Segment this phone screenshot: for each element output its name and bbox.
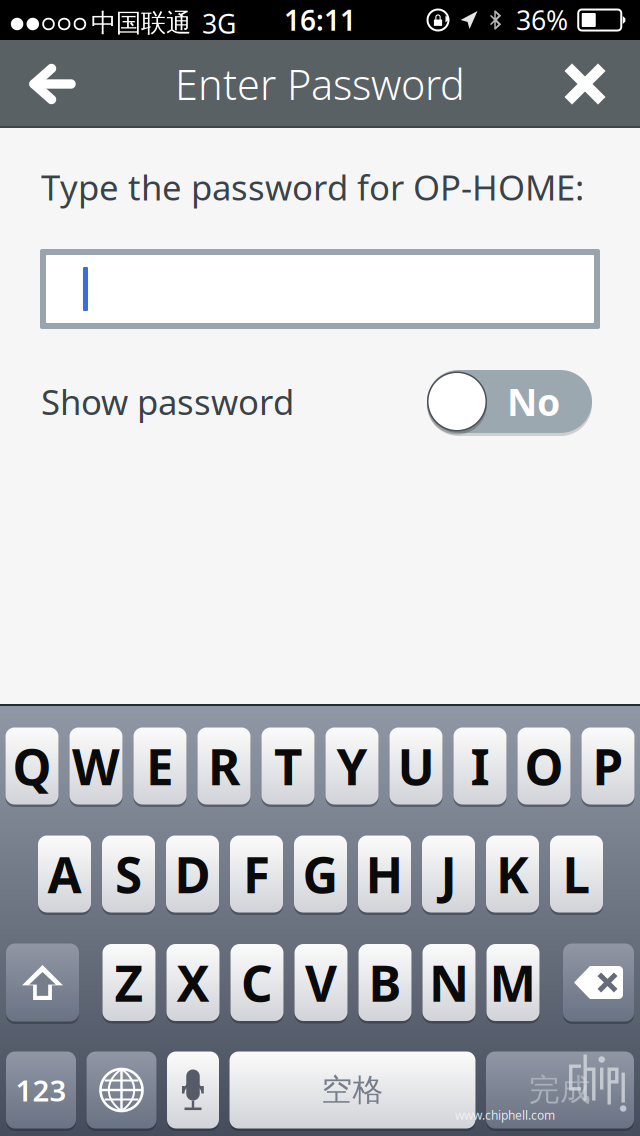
button[interactable]: F bbox=[230, 835, 283, 912]
staticText: A bbox=[47, 841, 81, 907]
staticText: Show password bbox=[41, 378, 294, 424]
staticText: 中国联通 bbox=[91, 7, 191, 38]
button[interactable]: R bbox=[197, 727, 250, 804]
staticText: G bbox=[302, 841, 338, 907]
button[interactable]: S bbox=[102, 835, 155, 912]
button[interactable]: C bbox=[230, 944, 283, 1021]
staticText: 完成 bbox=[529, 1071, 591, 1109]
staticText: Y bbox=[336, 733, 367, 799]
staticText: No bbox=[507, 377, 560, 426]
button[interactable]: V bbox=[294, 944, 347, 1021]
button[interactable]: K bbox=[486, 835, 539, 912]
staticText: 16:11 bbox=[284, 1, 356, 39]
staticText: O bbox=[524, 733, 563, 799]
button[interactable]: M bbox=[486, 944, 539, 1021]
staticText: L bbox=[562, 841, 590, 907]
button[interactable]: 空格 bbox=[229, 1051, 475, 1128]
button[interactable]: Dictate bbox=[167, 1051, 219, 1128]
button[interactable]: N bbox=[422, 944, 475, 1021]
button[interactable]: D bbox=[166, 835, 219, 912]
staticText: V bbox=[305, 950, 337, 1015]
staticText: S bbox=[115, 841, 142, 907]
staticText: 123 bbox=[15, 1070, 66, 1109]
button[interactable]: Show password bbox=[427, 370, 592, 433]
button[interactable]: Z bbox=[102, 944, 155, 1021]
staticText: 3G bbox=[202, 6, 236, 41]
staticText: T bbox=[274, 733, 302, 799]
staticText: B bbox=[368, 950, 401, 1015]
staticText: www.chiphell.com bbox=[455, 1107, 555, 1123]
staticText: 空格 bbox=[321, 1071, 383, 1109]
button[interactable]: Next keyboard bbox=[86, 1051, 156, 1128]
button[interactable]: X bbox=[166, 944, 219, 1021]
button[interactable]: Shift bbox=[6, 943, 79, 1021]
button[interactable]: Close bbox=[530, 40, 640, 128]
staticText: M bbox=[489, 950, 536, 1015]
staticText: F bbox=[243, 841, 270, 907]
staticText: Z bbox=[114, 950, 143, 1015]
button[interactable]: U bbox=[389, 727, 442, 804]
button[interactable]: J bbox=[422, 835, 475, 912]
staticText: H bbox=[365, 841, 403, 907]
button[interactable]: Q bbox=[5, 727, 58, 804]
staticText: R bbox=[208, 733, 240, 799]
staticText: Type the password for OP-HOME: bbox=[41, 164, 584, 210]
staticText: C bbox=[241, 950, 273, 1015]
staticText: K bbox=[496, 841, 529, 907]
staticText: Enter Password bbox=[175, 57, 465, 111]
staticText: D bbox=[174, 841, 210, 907]
button[interactable]: 123 bbox=[6, 1051, 76, 1128]
staticText: N bbox=[429, 950, 469, 1015]
button[interactable]: H bbox=[358, 835, 411, 912]
button[interactable]: A bbox=[38, 835, 91, 912]
button[interactable]: Back bbox=[0, 40, 104, 128]
button[interactable]: O bbox=[517, 727, 570, 804]
staticText: J bbox=[440, 841, 456, 907]
button[interactable]: B bbox=[358, 944, 411, 1021]
staticText: X bbox=[176, 950, 209, 1015]
staticText: Q bbox=[12, 733, 51, 799]
button[interactable]: Password bbox=[40, 249, 600, 329]
button[interactable]: L bbox=[550, 835, 603, 912]
staticText: U bbox=[397, 733, 434, 799]
staticText: P bbox=[592, 733, 623, 799]
staticText: 36% bbox=[516, 2, 568, 38]
staticText: I bbox=[470, 733, 489, 799]
button[interactable]: I bbox=[453, 727, 506, 804]
button[interactable]: Y bbox=[325, 727, 378, 804]
button[interactable]: Delete bbox=[563, 943, 634, 1021]
button[interactable]: W bbox=[69, 727, 122, 804]
staticText: E bbox=[146, 733, 174, 799]
button[interactable]: G bbox=[294, 835, 347, 912]
button[interactable]: E bbox=[133, 727, 186, 804]
button[interactable]: 完成 bbox=[486, 1051, 634, 1128]
button[interactable]: P bbox=[581, 727, 634, 804]
button[interactable]: T bbox=[261, 727, 314, 804]
staticText: W bbox=[72, 733, 120, 799]
